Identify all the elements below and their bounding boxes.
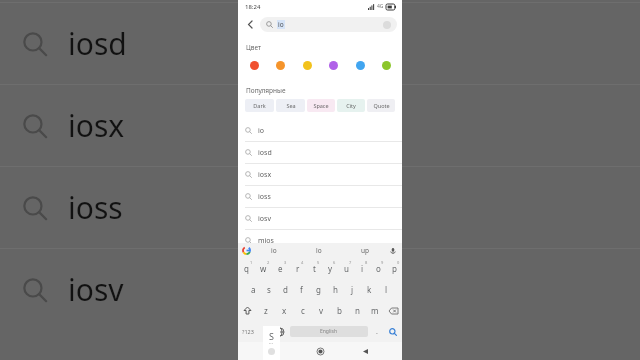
button[interactable]: u bbox=[338, 258, 354, 279]
staticText: m bbox=[371, 305, 379, 316]
button[interactable]: Shift bbox=[238, 300, 256, 321]
button[interactable]: a bbox=[245, 279, 261, 300]
button[interactable]: Voice input bbox=[388, 246, 398, 256]
staticText: S bbox=[269, 330, 274, 342]
button[interactable]: p bbox=[386, 258, 402, 279]
staticText: p bbox=[392, 263, 397, 274]
button[interactable]: b bbox=[330, 300, 348, 321]
button[interactable]: j bbox=[344, 279, 361, 300]
button[interactable]: io bbox=[251, 243, 296, 258]
staticText: d bbox=[283, 284, 288, 295]
button[interactable]: io bbox=[260, 17, 397, 32]
staticText: up bbox=[361, 246, 370, 255]
button[interactable]: x bbox=[275, 300, 294, 321]
button[interactable]: Home bbox=[312, 343, 328, 359]
button[interactable]: Backspace bbox=[384, 300, 402, 321]
button[interactable]: io bbox=[238, 120, 402, 141]
staticText: iosx bbox=[68, 105, 125, 146]
staticText: Space bbox=[313, 102, 329, 109]
button[interactable]: e bbox=[272, 258, 289, 279]
button[interactable]: Quote bbox=[367, 99, 395, 112]
staticText: Цвет bbox=[246, 43, 262, 52]
staticText: v bbox=[319, 305, 324, 316]
button[interactable]: w bbox=[255, 258, 272, 279]
button[interactable]: iosd bbox=[238, 142, 402, 163]
button[interactable]: Search bbox=[384, 321, 402, 342]
staticText: io bbox=[271, 246, 277, 255]
button[interactable]: o bbox=[370, 258, 386, 279]
button[interactable]: Back bbox=[243, 17, 257, 31]
button[interactable]: r bbox=[289, 258, 306, 279]
button[interactable]: Color bbox=[325, 57, 341, 73]
button[interactable]: Color bbox=[246, 57, 262, 73]
staticText: iosv bbox=[68, 269, 124, 310]
staticText: o bbox=[376, 263, 381, 274]
button[interactable]: Color bbox=[352, 57, 368, 73]
staticText: 1 bbox=[250, 260, 253, 265]
button[interactable]: k bbox=[361, 279, 378, 300]
button[interactable]: z bbox=[256, 300, 275, 321]
button[interactable]: Color bbox=[272, 57, 288, 73]
staticText: i bbox=[361, 263, 364, 274]
button[interactable]: n bbox=[348, 300, 366, 321]
staticText: n bbox=[355, 305, 360, 316]
staticText: mios bbox=[258, 236, 274, 246]
button[interactable]: c bbox=[294, 300, 312, 321]
staticText: f bbox=[300, 284, 303, 295]
staticText: 7 bbox=[349, 260, 352, 265]
staticText: z bbox=[264, 305, 268, 316]
staticText: 3 bbox=[284, 260, 287, 265]
staticText: ... bbox=[269, 339, 274, 346]
button[interactable]: Emoji bbox=[258, 321, 272, 342]
button[interactable]: ?123 bbox=[238, 321, 258, 342]
button[interactable]: iosx bbox=[238, 164, 402, 185]
button[interactable]: Sea bbox=[276, 99, 305, 112]
button[interactable]: Dark bbox=[245, 99, 274, 112]
staticText: e bbox=[278, 263, 283, 274]
button[interactable]: Color bbox=[378, 57, 394, 73]
staticText: iosx bbox=[258, 170, 272, 180]
button[interactable]: Google bbox=[242, 246, 251, 255]
button[interactable]: iosv bbox=[238, 208, 402, 229]
button[interactable]: h bbox=[327, 279, 344, 300]
staticText: io bbox=[278, 20, 284, 29]
button[interactable]: y bbox=[322, 258, 338, 279]
button[interactable]: Change language bbox=[272, 321, 288, 342]
button[interactable]: Space bbox=[307, 99, 335, 112]
button[interactable]: Color bbox=[299, 57, 315, 73]
staticText: 5 bbox=[317, 260, 320, 265]
button[interactable]: f bbox=[293, 279, 310, 300]
button[interactable]: l bbox=[378, 279, 395, 300]
staticText: b bbox=[337, 305, 342, 316]
button[interactable]: i bbox=[354, 258, 370, 279]
button[interactable]: Back bbox=[357, 343, 373, 359]
button[interactable]: q bbox=[238, 258, 255, 279]
button[interactable]: s bbox=[261, 279, 277, 300]
staticText: 4G bbox=[377, 3, 384, 10]
button[interactable]: City bbox=[337, 99, 365, 112]
button[interactable]: . bbox=[370, 321, 384, 342]
staticText: j bbox=[351, 284, 354, 295]
button[interactable]: ioss bbox=[238, 186, 402, 207]
staticText: Популярные bbox=[246, 86, 286, 95]
staticText: Dark bbox=[253, 102, 266, 109]
staticText: g bbox=[316, 284, 321, 295]
staticText: iosv bbox=[258, 214, 271, 224]
button[interactable]: v bbox=[312, 300, 330, 321]
button[interactable]: up bbox=[342, 243, 388, 258]
staticText: 9 bbox=[381, 260, 384, 265]
button[interactable]: t bbox=[306, 258, 322, 279]
staticText: City bbox=[346, 102, 356, 109]
staticText: w bbox=[260, 263, 267, 274]
staticText: t bbox=[313, 263, 316, 274]
button[interactable]: m bbox=[366, 300, 384, 321]
button[interactable]: mios bbox=[238, 230, 402, 251]
button[interactable]: d bbox=[277, 279, 293, 300]
button[interactable]: Recents bbox=[267, 343, 283, 359]
staticText: l bbox=[385, 284, 388, 295]
button[interactable]: lo bbox=[296, 243, 342, 258]
button[interactable]: g bbox=[310, 279, 327, 300]
staticText: English bbox=[320, 328, 338, 335]
button[interactable]: Clear bbox=[383, 21, 391, 29]
button[interactable]: English bbox=[290, 326, 368, 337]
